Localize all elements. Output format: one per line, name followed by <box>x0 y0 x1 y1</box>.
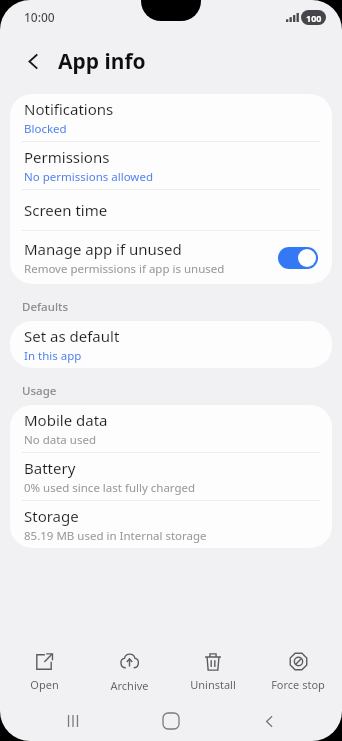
staticText: Usage <box>22 383 57 399</box>
staticText: In this app <box>24 348 82 364</box>
staticText: Battery <box>24 458 76 478</box>
staticText: Notifications <box>24 99 114 119</box>
button[interactable]: Recent apps <box>48 701 98 741</box>
staticText: 100 <box>306 12 322 24</box>
button[interactable]: Screen time <box>10 190 332 230</box>
button[interactable]: Notifications <box>10 94 332 141</box>
button[interactable]: Uninstall <box>172 649 254 696</box>
staticText: Archive <box>110 678 149 693</box>
staticText: Manage app if unused <box>24 239 182 259</box>
button[interactable]: Storage <box>10 501 332 548</box>
staticText: No permissions allowed <box>24 169 153 185</box>
staticText: Force stop <box>271 677 325 692</box>
button[interactable]: Manage app if unused <box>10 231 332 284</box>
staticText: Set as default <box>24 326 120 346</box>
button[interactable]: Permissions <box>10 142 332 189</box>
button[interactable]: Open <box>3 649 85 696</box>
staticText: Blocked <box>24 121 67 137</box>
staticText: Defaults <box>22 299 68 315</box>
button[interactable]: Battery <box>10 453 332 500</box>
staticText: Permissions <box>24 147 110 167</box>
button[interactable]: Back <box>16 44 50 78</box>
staticText: Screen time <box>24 200 108 220</box>
staticText: Remove permissions if app is unused <box>24 261 225 277</box>
staticText: 85.19 MB used in Internal storage <box>24 528 207 544</box>
staticText: 0% used since last fully charged <box>24 480 196 496</box>
staticText: Uninstall <box>190 677 236 692</box>
button[interactable]: Back <box>244 701 294 741</box>
staticText: 10:00 <box>24 9 55 25</box>
button[interactable]: Mobile data <box>10 405 332 452</box>
staticText: No data used <box>24 432 96 448</box>
staticText: Mobile data <box>24 410 108 430</box>
button[interactable]: Set as default <box>10 321 332 368</box>
staticText: Open <box>30 677 59 692</box>
button[interactable]: Home <box>146 701 196 741</box>
staticText: Storage <box>24 506 79 526</box>
button[interactable]: Force stop <box>257 648 339 696</box>
button[interactable]: Archive <box>88 647 170 697</box>
staticText: App info <box>58 47 146 76</box>
